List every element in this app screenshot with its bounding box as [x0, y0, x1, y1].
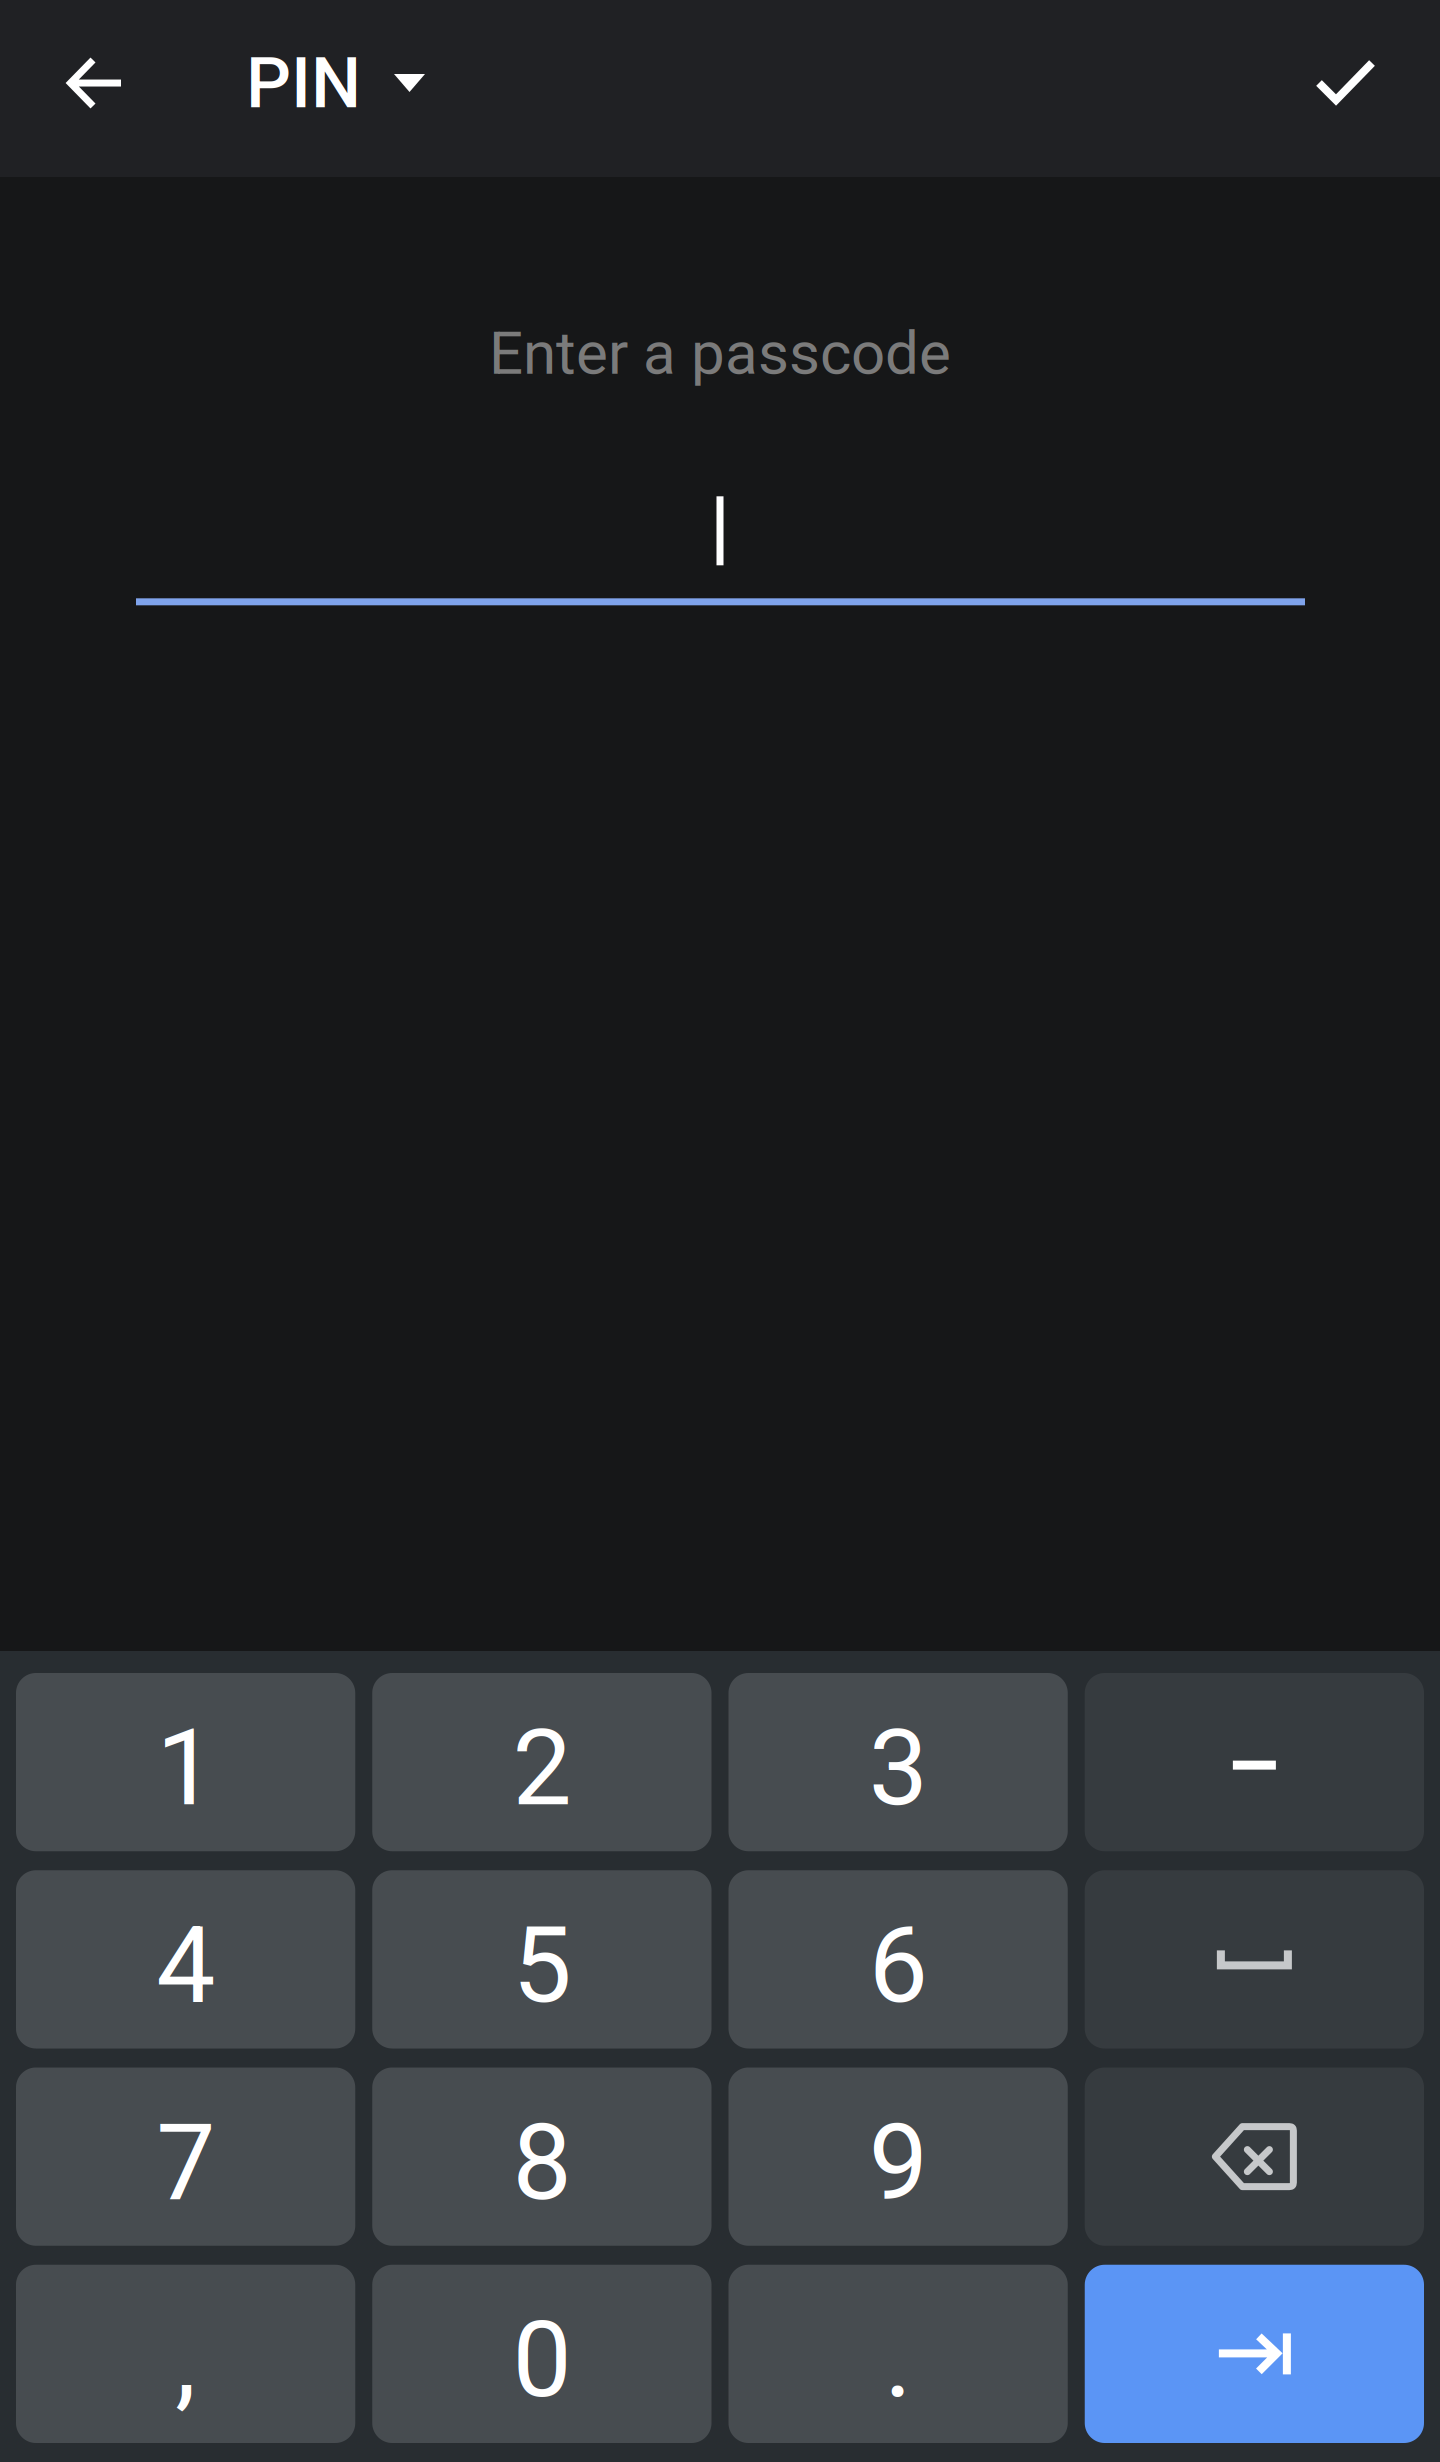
staticText: 6: [869, 1904, 928, 2027]
staticText: 3: [869, 1706, 928, 1830]
staticText: PIN: [246, 42, 361, 124]
button[interactable]: 4: [16, 1870, 355, 2048]
staticText: 7: [156, 2101, 215, 2224]
button[interactable]: Space: [1085, 1870, 1424, 2048]
button[interactable]: Next: [1085, 2265, 1424, 2443]
staticText: 4: [156, 1904, 215, 2027]
staticText: 8: [512, 2101, 571, 2224]
staticText: Enter a passcode: [489, 318, 951, 388]
button[interactable]: 5: [372, 1870, 711, 2048]
button[interactable]: Back: [31, 13, 161, 153]
button[interactable]: PIN: [221, 13, 449, 153]
button[interactable]: 6: [728, 1870, 1068, 2048]
staticText: 1: [156, 1706, 215, 1830]
button[interactable]: .: [728, 2265, 1068, 2443]
button[interactable]: 9: [728, 2067, 1068, 2246]
staticText: .: [884, 2298, 912, 2422]
button[interactable]: Minus: [1085, 1673, 1424, 1851]
staticText: 2: [512, 1706, 571, 1830]
staticText: 0: [512, 2298, 571, 2422]
staticText: ,: [175, 2298, 196, 2422]
button[interactable]: 2: [372, 1673, 711, 1851]
button[interactable]: ,: [16, 2265, 355, 2443]
staticText: 5: [512, 1904, 571, 2027]
button[interactable]: 8: [372, 2067, 711, 2246]
button[interactable]: 1: [16, 1673, 355, 1851]
button[interactable]: Confirm: [1283, 13, 1413, 153]
button[interactable]: Backspace: [1085, 2067, 1424, 2246]
button[interactable]: 0: [372, 2265, 711, 2443]
button[interactable]: 7: [16, 2067, 355, 2246]
staticText: 9: [869, 2101, 928, 2224]
button[interactable]: 3: [728, 1673, 1068, 1851]
